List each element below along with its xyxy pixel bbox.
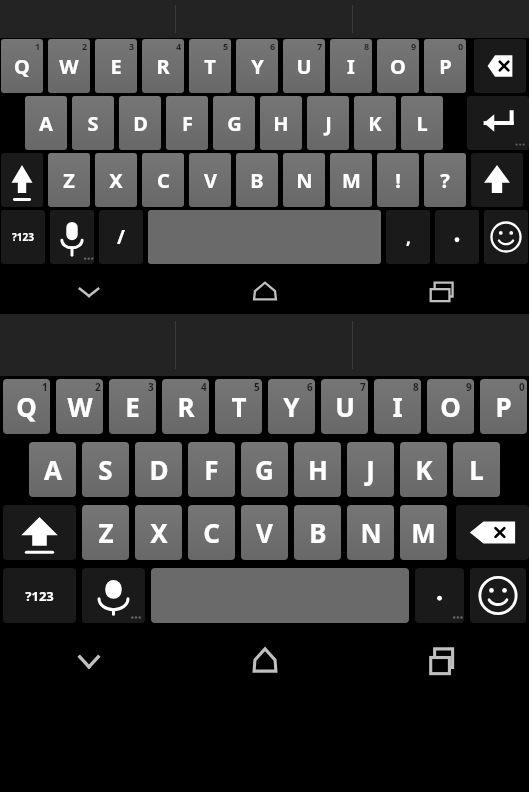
button[interactable]: K [354, 96, 396, 150]
button[interactable]: W [48, 39, 90, 93]
button[interactable]: O [377, 39, 419, 93]
button[interactable]: Period [435, 210, 479, 264]
button[interactable]: T [215, 379, 262, 434]
staticText: H [308, 452, 328, 487]
button[interactable]: Hide keyboard [0, 268, 177, 314]
button[interactable]: B [294, 505, 341, 560]
button[interactable]: V [241, 505, 288, 560]
button[interactable]: U [283, 39, 325, 93]
button[interactable]: A [29, 442, 76, 497]
button[interactable]: Symbols [3, 568, 76, 623]
button[interactable]: U [321, 379, 368, 434]
button[interactable]: ? [424, 153, 466, 207]
button[interactable]: S [82, 442, 129, 497]
button[interactable]: M [330, 153, 372, 207]
button[interactable]: L [401, 96, 443, 150]
button[interactable]: C [188, 505, 235, 560]
staticText: 7 [317, 40, 323, 52]
button[interactable]: N [283, 153, 325, 207]
button[interactable]: X [95, 153, 137, 207]
button[interactable]: Z [48, 153, 90, 207]
button[interactable]: Comma [386, 210, 430, 264]
button[interactable]: P [424, 39, 466, 93]
button[interactable]: B [236, 153, 278, 207]
button[interactable]: Shift [3, 505, 76, 560]
button[interactable]: H [260, 96, 302, 150]
button[interactable]: Emoji [484, 210, 528, 264]
button[interactable]: R [142, 39, 184, 93]
staticText: ?123 [25, 587, 54, 605]
button[interactable]: R [162, 379, 209, 434]
button[interactable]: I [374, 379, 421, 434]
button[interactable]: Slash [99, 210, 143, 264]
button[interactable]: Z [82, 505, 129, 560]
button[interactable]: W [56, 379, 103, 434]
button[interactable]: Home [177, 629, 353, 691]
button[interactable]: Q [3, 379, 50, 434]
button[interactable]: Symbols [1, 210, 45, 264]
button[interactable]: Period [415, 568, 464, 623]
button[interactable]: J [347, 442, 394, 497]
button[interactable]: Hide keyboard [0, 629, 177, 691]
button[interactable]: A [25, 96, 67, 150]
button[interactable]: M [400, 505, 447, 560]
button[interactable]: X [135, 505, 182, 560]
button[interactable]: P [480, 379, 527, 434]
staticText: X [150, 515, 168, 550]
button[interactable]: F [188, 442, 235, 497]
button[interactable]: Backspace [456, 505, 529, 560]
button[interactable]: E [95, 39, 137, 93]
staticText: F [204, 452, 219, 487]
button[interactable]: F [166, 96, 208, 150]
button[interactable]: D [119, 96, 161, 150]
staticText: M [342, 167, 361, 194]
button[interactable]: Backspace [474, 39, 526, 93]
button[interactable]: Shift [471, 153, 523, 207]
button[interactable]: Recents [353, 268, 529, 314]
staticText: D [149, 452, 169, 487]
button[interactable]: Home [177, 268, 353, 314]
button[interactable]: Emoji [470, 568, 526, 623]
button[interactable]: Y [236, 39, 278, 93]
staticText: A [44, 452, 62, 487]
button[interactable]: C [142, 153, 184, 207]
button[interactable]: G [213, 96, 255, 150]
button[interactable]: O [427, 379, 474, 434]
staticText: 1 [35, 40, 41, 52]
button[interactable]: E [109, 379, 156, 434]
button[interactable]: S [72, 96, 114, 150]
button[interactable]: ! [377, 153, 419, 207]
button[interactable]: Recents [353, 629, 529, 691]
staticText: K [368, 110, 382, 137]
button[interactable]: H [294, 442, 341, 497]
button[interactable]: G [241, 442, 288, 497]
staticText: G [227, 110, 242, 137]
button[interactable]: Y [268, 379, 315, 434]
button[interactable]: Voice input [82, 568, 145, 623]
staticText: B [250, 167, 264, 194]
button[interactable]: Q [1, 39, 43, 93]
button[interactable]: L [453, 442, 500, 497]
staticText: , [406, 226, 411, 249]
button[interactable]: Shift [1, 153, 43, 207]
button[interactable]: Enter [467, 96, 529, 150]
button[interactable]: J [307, 96, 349, 150]
button[interactable]: N [347, 505, 394, 560]
button[interactable]: D [135, 442, 182, 497]
staticText: 0 [519, 380, 525, 394]
staticText: U [296, 53, 312, 80]
button[interactable]: K [400, 442, 447, 497]
button[interactable]: I [330, 39, 372, 93]
button[interactable]: Voice input [50, 210, 94, 264]
staticText: K [415, 452, 433, 487]
button[interactable]: T [189, 39, 231, 93]
button[interactable]: V [189, 153, 231, 207]
